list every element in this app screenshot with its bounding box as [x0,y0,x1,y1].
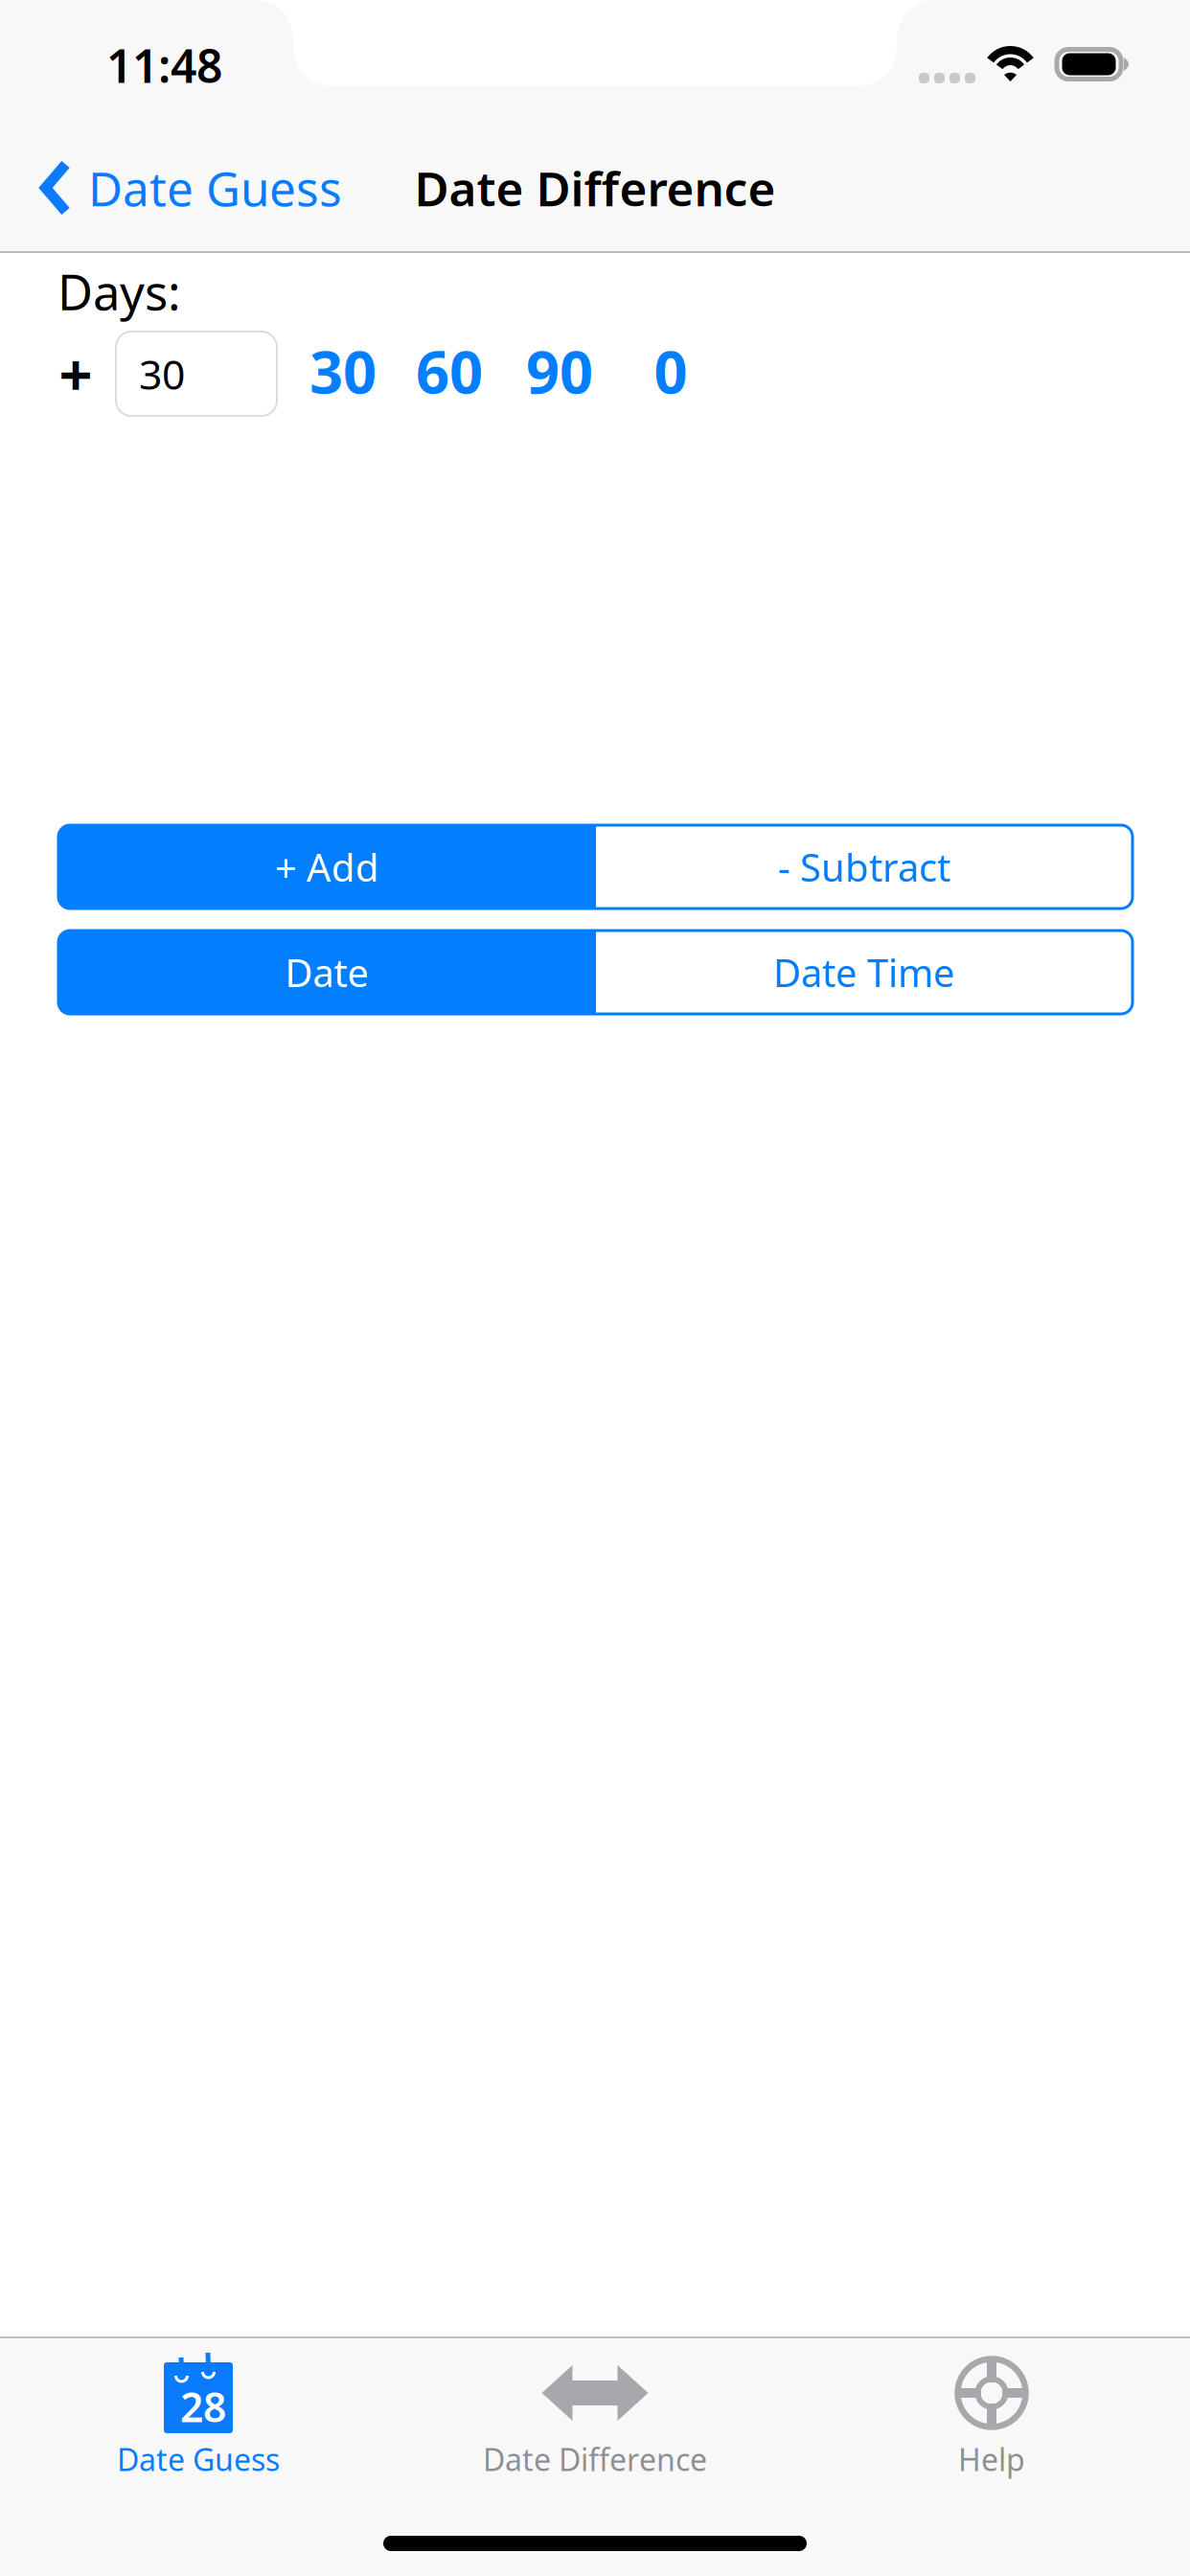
button[interactable]: - Subtract [596,825,1133,908]
staticText: + [59,335,92,413]
staticText: 60 [416,332,483,410]
button[interactable]: 90 [512,329,607,413]
staticText: Date Guess [117,2439,280,2479]
button[interactable]: Date Difference [397,2350,793,2484]
staticText: 11:48 [106,35,222,96]
staticText: Date Time [773,947,955,998]
button[interactable]: 0 [623,329,719,413]
staticText: 28 [180,2379,226,2434]
staticText: Date Difference [414,156,776,219]
staticText: Days: [57,259,181,324]
button[interactable]: 60 [401,329,497,413]
staticText: 0 [654,332,687,410]
staticText: Date [285,947,369,998]
staticText: - Subtract [778,841,950,892]
button[interactable]: 30 [295,329,391,413]
button[interactable]: Date Time [596,931,1133,1014]
staticText: + Add [275,841,379,892]
staticText: 30 [309,332,377,410]
staticText: 30 [139,347,185,401]
button[interactable]: Help [793,2350,1190,2484]
button[interactable]: Date Guess [0,2350,397,2484]
staticText: Date Guess [88,156,342,219]
staticText: Help [958,2439,1025,2479]
staticText: Date Difference [483,2439,707,2479]
button[interactable]: Date [58,931,596,1014]
staticText: 90 [526,332,593,410]
button[interactable]: Back to Date Guess [0,126,367,249]
button[interactable]: + Add [58,825,596,908]
